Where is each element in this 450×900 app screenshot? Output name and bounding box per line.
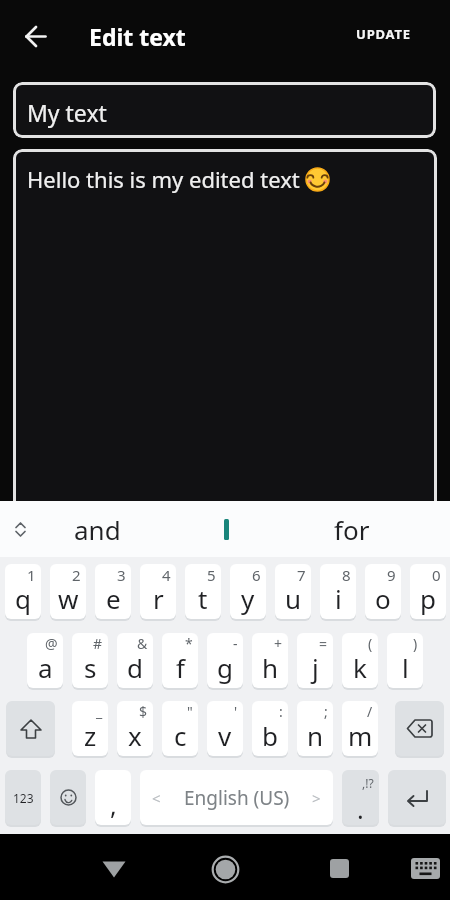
staticText: . [357,792,364,825]
staticText: $ [139,702,148,721]
button[interactable]: v [207,701,243,756]
button[interactable]: English (US) [140,770,333,825]
staticText: x [128,718,142,753]
button[interactable]: j [297,633,333,688]
button[interactable]: n [297,701,333,756]
button[interactable] [212,856,239,883]
button[interactable]: c [162,701,198,756]
staticText: i [335,581,342,616]
staticText: z [84,718,97,753]
staticText: 3 [117,565,126,585]
staticText: 8 [342,565,351,585]
staticText: " [187,702,193,721]
staticText: for [334,512,370,547]
staticText: h [262,650,279,685]
staticText: and [74,512,121,547]
staticText: @ [45,634,58,653]
staticText: j [312,650,319,685]
staticText: ; [324,702,328,721]
staticText: 123 [13,790,34,806]
button[interactable]: t [185,564,221,619]
button[interactable]: f [162,633,198,688]
button[interactable]: z [72,701,108,756]
staticText: : [279,702,283,721]
staticText: b [262,718,278,753]
button[interactable]: r [140,564,176,619]
button[interactable] [25,26,47,48]
button[interactable] [330,859,349,878]
staticText: 5 [207,565,216,585]
button[interactable] [388,770,446,825]
staticText: ) [413,634,418,653]
button[interactable]: s [72,633,108,688]
button[interactable]: Hello this is my edited text [13,149,437,559]
staticText: My text [27,97,107,128]
staticText: * [185,634,193,653]
staticText: & [137,634,148,653]
staticText: t [198,581,208,616]
staticText: 7 [297,565,306,585]
button[interactable]: My text [13,82,436,138]
staticText: , [110,788,117,822]
staticText: y [241,581,255,616]
button[interactable]: x [117,701,153,756]
button[interactable]: y [230,564,266,619]
staticText: UPDATE [356,25,411,43]
button[interactable] [6,701,55,756]
button[interactable]: a [27,633,63,688]
button[interactable]: w [50,564,86,619]
button[interactable] [102,861,126,878]
staticText: Edit text [89,21,186,52]
staticText: 4 [162,565,171,585]
button[interactable]: k [342,633,378,688]
button[interactable]: h [252,633,288,688]
button[interactable]: . [342,770,379,825]
button[interactable]: b [252,701,288,756]
button[interactable] [411,858,440,879]
staticText: e [106,581,121,616]
staticText: 9 [387,565,396,585]
button[interactable] [14,521,27,538]
button[interactable]: d [117,633,153,688]
button[interactable]: l [387,633,423,688]
button[interactable]: 123 [5,770,41,825]
button[interactable] [50,770,86,825]
staticText: o [375,581,391,616]
button[interactable]: q [5,564,41,619]
staticText: f [176,650,185,685]
staticText: g [217,650,233,685]
staticText: Hello this is my edited text [27,164,300,194]
staticText: ' [234,702,238,721]
button[interactable]: m [342,701,378,756]
staticText: # [93,634,103,653]
button[interactable]: o [365,564,401,619]
staticText: v [218,718,232,753]
staticText: k [353,650,367,685]
staticText: d [127,650,143,685]
button[interactable]: for [297,501,407,557]
button[interactable] [171,501,281,557]
staticText: s [84,650,97,685]
staticText: / [367,702,373,721]
staticText: ( [368,634,373,653]
staticText: > [312,788,321,808]
button[interactable]: i [320,564,356,619]
staticText: w [58,581,79,616]
staticText: - [233,634,238,653]
staticText: l [402,650,409,685]
button[interactable]: g [207,633,243,688]
button[interactable]: , [95,770,131,825]
staticText: _ [96,702,103,721]
button[interactable]: e [95,564,131,619]
staticText: English (US) [184,785,290,811]
staticText: 0 [432,565,441,585]
staticText: 6 [252,565,261,585]
staticText: = [319,634,328,653]
button[interactable]: p [410,564,446,619]
button[interactable]: and [42,501,152,557]
staticText: u [285,581,302,616]
staticText: ,!? [362,775,374,791]
button[interactable]: UPDATE [343,17,423,51]
button[interactable] [395,701,444,756]
button[interactable]: u [275,564,311,619]
